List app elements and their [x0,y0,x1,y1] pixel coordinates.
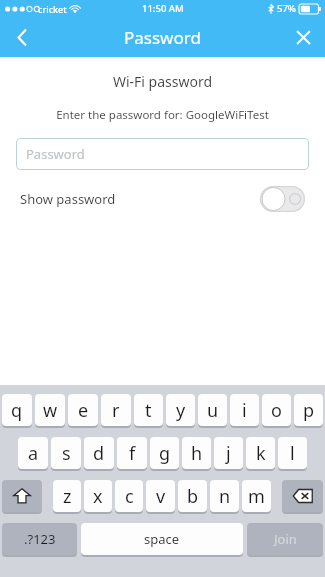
staticText: k [256,441,266,466]
staticText: Join [274,530,297,548]
staticText: r [112,398,120,423]
button[interactable]: i [230,394,259,428]
staticText: Wi-Fi password [0,72,325,91]
staticText: f [129,441,136,466]
staticText: m [248,484,265,509]
button[interactable]: Back [0,17,44,57]
button[interactable]: c [115,480,143,514]
staticText: g [159,441,171,466]
button[interactable]: p [294,394,323,428]
button[interactable]: r [101,394,131,428]
staticText: h [191,441,203,466]
button[interactable]: t [134,394,163,428]
staticText: cricket [38,3,67,15]
staticText: o [271,398,282,423]
staticText: n [219,484,231,509]
button[interactable]: Join [247,523,323,557]
staticText: 57% [277,2,296,15]
button[interactable]: f [117,437,147,471]
staticText: Show password [20,190,116,208]
staticText: l [290,441,295,466]
staticText: space [144,530,180,548]
staticText: p [303,398,315,423]
button[interactable]: u [198,394,227,428]
staticText: d [93,441,105,466]
staticText: Password [26,145,85,163]
staticText: w [43,398,58,423]
button[interactable]: g [150,437,179,471]
button[interactable]: z [53,480,81,514]
button[interactable]: a [18,437,48,471]
button[interactable]: Shift [2,480,42,514]
staticText: x [93,484,103,509]
button[interactable]: m [242,480,271,514]
staticText: c [125,484,134,509]
button[interactable]: space [81,523,243,557]
staticText: i [242,398,247,423]
button[interactable]: .?123 [2,523,77,557]
staticText: 11:50 AM [142,2,184,15]
staticText: Enter the password for: GoogleWiFiTest [0,107,325,123]
staticText: v [156,484,166,509]
button[interactable]: s [51,437,81,471]
button[interactable]: Password [16,138,309,170]
button[interactable]: e [68,394,98,428]
staticText: j [226,441,231,466]
button[interactable]: j [214,437,243,471]
staticText: y [176,398,186,423]
button[interactable]: b [178,480,207,514]
staticText: s [62,441,71,466]
staticText: u [207,398,219,423]
staticText: e [78,398,89,423]
staticText: a [28,441,39,466]
button[interactable]: l [278,437,307,471]
button[interactable]: h [182,437,211,471]
staticText: q [11,398,23,423]
button[interactable]: v [146,480,175,514]
staticText: b [187,484,199,509]
staticText: Password [124,26,201,49]
button[interactable]: Close [281,17,325,57]
button[interactable]: Backspace [282,480,323,514]
button[interactable]: y [166,394,195,428]
staticText: .?123 [24,530,56,548]
button[interactable]: o [262,394,291,428]
button[interactable]: n [210,480,239,514]
staticText: t [145,398,152,423]
button[interactable]: q [2,394,32,428]
staticText: z [63,484,72,509]
button[interactable]: w [35,394,65,428]
button[interactable]: x [84,480,112,514]
button[interactable]: k [246,437,275,471]
button[interactable]: d [84,437,114,471]
button[interactable]: Show password [20,184,305,214]
